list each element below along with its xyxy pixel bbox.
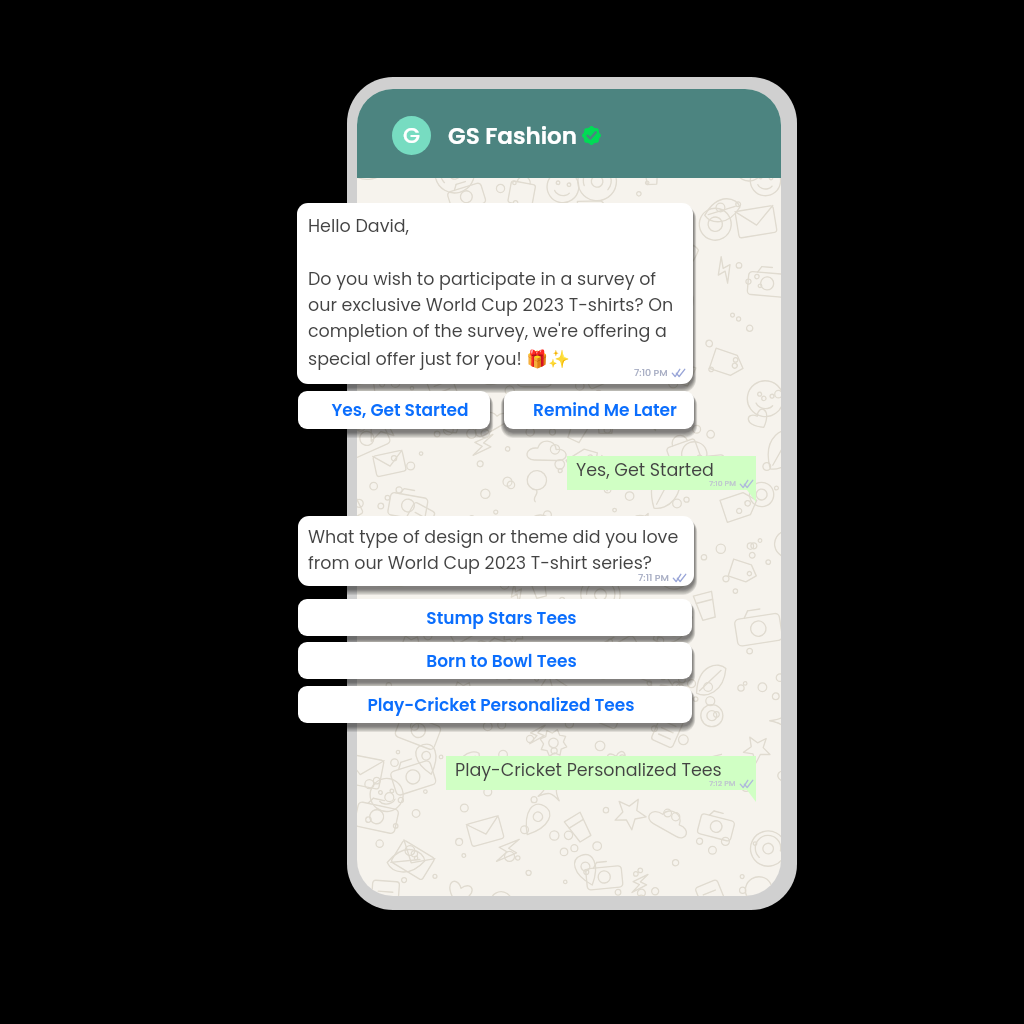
button[interactable]: Yes, Get Started [298, 391, 490, 429]
button[interactable]: Yes, Get Started [567, 456, 756, 490]
staticText: Play-Cricket Personalized Tees [367, 693, 635, 717]
button[interactable]: Hello David, [297, 203, 693, 384]
button[interactable]: Play-Cricket Personalized Tees [446, 756, 756, 790]
staticText: Remind Me Later [533, 398, 677, 422]
button[interactable]: Remind Me Later [504, 391, 694, 429]
staticText: Yes, Get Started [331, 398, 469, 422]
staticText: 7:11 PM [638, 571, 669, 584]
staticText: Hello David, [308, 214, 410, 239]
staticText: What type of design or theme did you lov… [308, 525, 688, 575]
other: Verified business account [582, 126, 601, 145]
staticText: G [403, 120, 421, 151]
staticText: Stump Stars Tees [426, 606, 577, 630]
staticText: Yes, Get Started [576, 458, 714, 483]
button[interactable]: G [357, 89, 781, 178]
staticText: GS Fashion [448, 120, 577, 152]
staticText: 7:10 PM [634, 366, 668, 379]
staticText: 7:12 PM [709, 778, 736, 789]
staticText: 7:10 PM [709, 478, 736, 489]
staticText: Do you wish to participate in a survey o… [308, 267, 685, 371]
button[interactable]: What type of design or theme did you lov… [298, 516, 694, 586]
button[interactable]: Stump Stars Tees [298, 599, 692, 636]
button[interactable]: Born to Bowl Tees [298, 642, 692, 679]
staticText: Play-Cricket Personalized Tees [455, 758, 722, 783]
staticText: Born to Bowl Tees [426, 649, 577, 673]
button[interactable]: Play-Cricket Personalized Tees [298, 686, 692, 723]
